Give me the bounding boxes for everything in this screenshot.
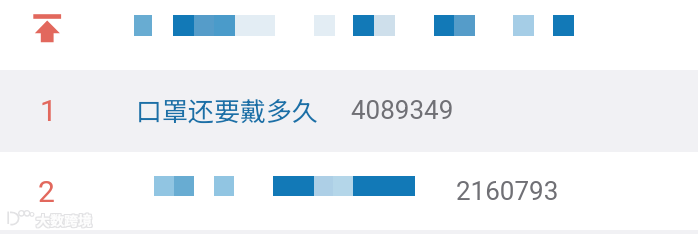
button[interactable]: Move to top [25,5,70,50]
button[interactable]: 1 [0,70,698,152]
staticText: 大数跨境 [37,210,93,230]
staticText: 2160793 [456,176,559,206]
staticText: 4089349 [351,95,454,125]
button[interactable]: Move to top [0,0,698,70]
staticText: 大数跨境 [35,211,91,231]
staticText: 大数跨境 [35,210,91,230]
staticText: 大数跨境 [36,211,92,231]
staticText: 大数跨境 [36,210,92,230]
staticText: 大数跨境 [36,209,92,229]
staticText: 2 [38,174,55,209]
button[interactable]: 2 [0,152,698,229]
staticText: 大数跨境 [35,209,91,229]
staticText: 大数跨境 [37,211,93,231]
staticText: 口罩还要戴多久 [136,91,319,129]
staticText: 大数跨境 [37,209,93,229]
staticText: 1 [40,93,57,128]
